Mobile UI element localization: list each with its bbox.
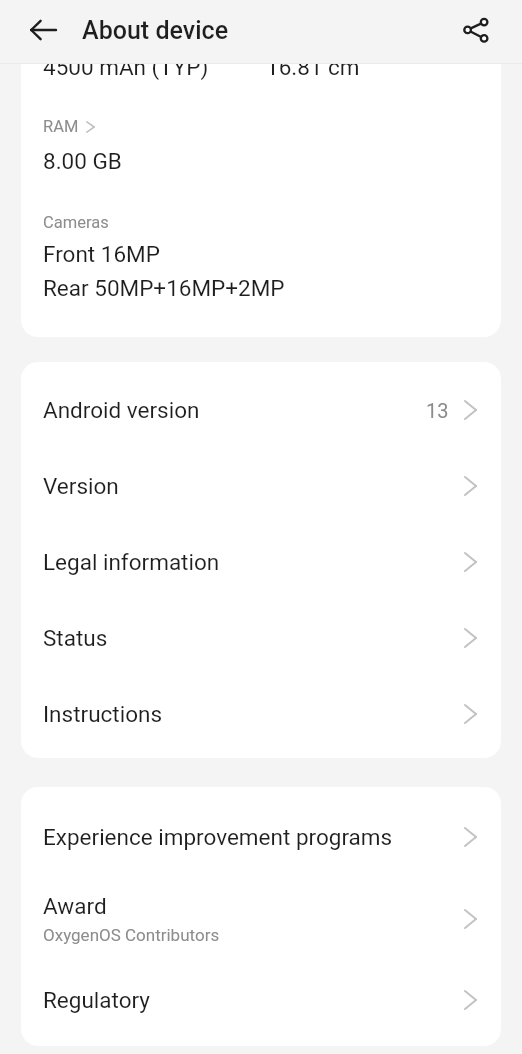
staticText: Cameras [43, 213, 109, 232]
button[interactable]: Award [21, 873, 501, 960]
button[interactable]: Legal information [21, 522, 501, 598]
button[interactable]: Battery [43, 23, 266, 80]
staticText: OxygenOS Contributors [43, 925, 220, 945]
staticText: Legal information [43, 549, 220, 575]
button[interactable]: Regulatory [21, 960, 501, 1036]
staticText: Status [43, 625, 108, 651]
button[interactable]: Version [21, 446, 501, 522]
staticText: 4500 mAh (TYP) [43, 54, 209, 80]
staticText: Instructions [43, 701, 163, 727]
staticText: Version [43, 473, 119, 499]
staticText: 16.81 cm [266, 54, 360, 80]
staticText: Rear 50MP+16MP+2MP [43, 275, 285, 301]
staticText: 13 [426, 399, 449, 422]
button[interactable]: RAM [43, 117, 273, 174]
button[interactable]: Status [21, 598, 501, 674]
staticText: About device [82, 16, 229, 45]
button[interactable]: Experience improvement programs [21, 797, 501, 873]
staticText: RAM [43, 117, 79, 136]
button[interactable]: Instructions [21, 674, 501, 750]
staticText: 8.00 GB [43, 148, 122, 174]
staticText: Award [43, 893, 107, 919]
staticText: Experience improvement programs [43, 824, 393, 850]
staticText: Regulatory [43, 987, 150, 1013]
button[interactable]: Display [266, 23, 446, 80]
button[interactable]: Android version [21, 370, 501, 446]
staticText: Android version [43, 397, 200, 423]
button[interactable]: Share [450, 4, 502, 56]
staticText: Front 16MP [43, 241, 160, 267]
staticText: Battery [43, 23, 96, 42]
button[interactable]: Back [18, 4, 70, 56]
